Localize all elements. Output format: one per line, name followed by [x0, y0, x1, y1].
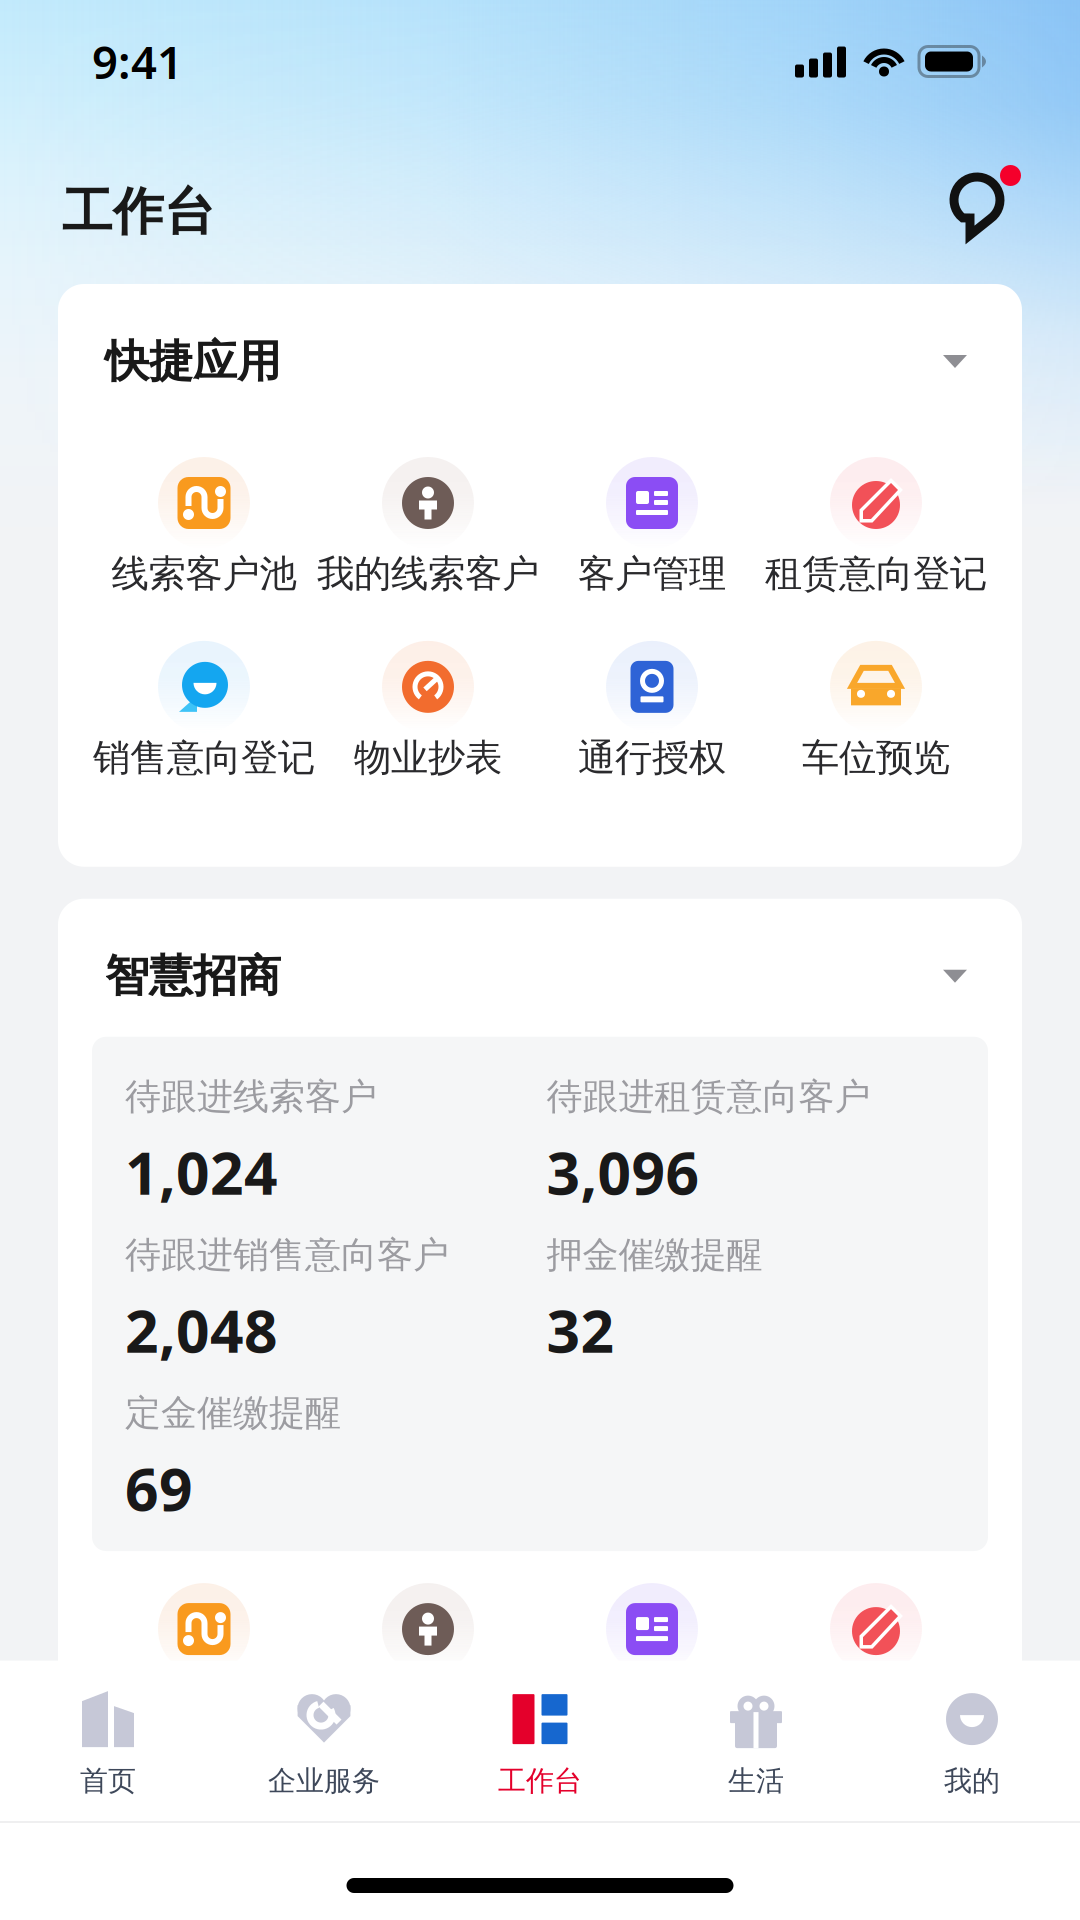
button[interactable]: 我的	[864, 1691, 1080, 1798]
staticText: 企业服务	[268, 1764, 380, 1798]
staticText: 定金催缴提醒	[125, 1391, 341, 1435]
button[interactable]: 客户管理	[540, 457, 764, 597]
button[interactable]: 通行授权	[540, 641, 764, 781]
button[interactable]: 生活	[648, 1691, 864, 1798]
staticText: 租赁意向登记	[765, 551, 987, 597]
staticText: 69	[125, 1449, 193, 1527]
staticText: 通行授权	[578, 735, 726, 781]
staticText: 客户管理	[578, 551, 726, 597]
staticText: 2,048	[125, 1291, 278, 1369]
button[interactable]: 企业服务	[216, 1691, 432, 1798]
staticText: 3,096	[546, 1133, 699, 1211]
staticText: 32	[546, 1291, 614, 1369]
staticText: 工作台	[62, 181, 215, 243]
button[interactable]: 线索客户池	[92, 457, 316, 597]
button[interactable]: 物业抄表	[316, 641, 540, 781]
staticText: 我的线索客户	[317, 551, 539, 597]
button[interactable]: 车位预览	[764, 641, 988, 781]
staticText: 待跟进线索客户	[125, 1075, 377, 1119]
staticText: 生活	[728, 1764, 784, 1798]
button[interactable]: 消息	[948, 173, 1028, 251]
button[interactable]: 销售意向登记	[92, 641, 316, 781]
button[interactable]: 我的线索客户	[316, 457, 540, 597]
staticText: 9:41	[92, 31, 183, 92]
staticText: 快捷应用	[105, 334, 281, 388]
button[interactable]: 租赁意向登记	[764, 457, 988, 597]
staticText: 押金催缴提醒	[546, 1233, 762, 1277]
staticText: 车位预览	[802, 735, 950, 781]
staticText: 物业抄表	[354, 735, 502, 781]
staticText: 线索客户池	[111, 551, 296, 597]
button[interactable]: 收起智慧招商	[926, 949, 984, 1004]
staticText: 智慧招商	[105, 949, 281, 1003]
button[interactable]: 工作台	[432, 1691, 648, 1798]
staticText: 首页	[80, 1764, 136, 1798]
staticText: 我的	[944, 1764, 1000, 1798]
staticText: 1,024	[125, 1133, 278, 1211]
button[interactable]: 收起快捷应用	[926, 334, 984, 389]
staticText: 工作台	[498, 1764, 582, 1798]
staticText: 销售意向登记	[93, 735, 315, 781]
button[interactable]: 首页	[0, 1691, 216, 1798]
staticText: 待跟进销售意向客户	[125, 1233, 449, 1277]
staticText: 待跟进租赁意向客户	[546, 1075, 870, 1119]
